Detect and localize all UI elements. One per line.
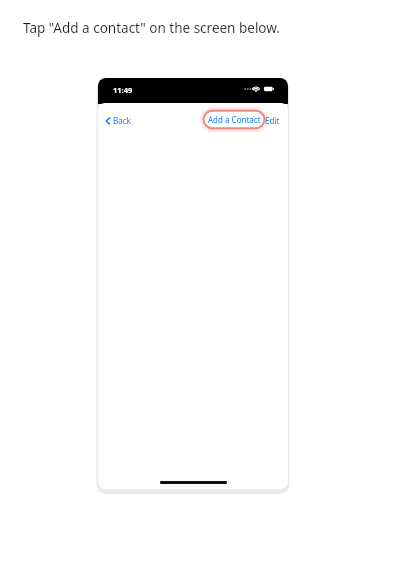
staticText: Edit <box>265 115 280 126</box>
staticText: 11:49 <box>113 85 133 95</box>
button[interactable]: Add a Contact <box>202 109 266 130</box>
staticText: Add a Contact <box>208 114 261 125</box>
button[interactable]: Back <box>102 111 142 129</box>
button[interactable]: Edit <box>265 111 283 129</box>
staticText: Tap "Add a contact" on the screen below. <box>23 19 280 37</box>
other: Home indicator <box>160 481 227 484</box>
staticText: Back <box>113 115 131 126</box>
